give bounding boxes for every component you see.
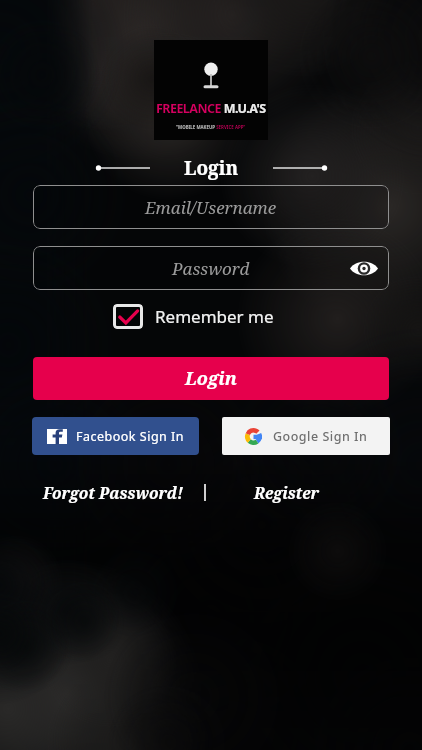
staticText: Login (184, 155, 239, 181)
button[interactable]: Forgot Password! (43, 482, 184, 503)
button[interactable]: Google Sign In (222, 417, 390, 455)
staticText: "MOBILE MAKEUP SERVICE APP" (176, 124, 246, 130)
button[interactable]: Show password (349, 253, 379, 283)
button[interactable]: Email/Username (33, 185, 389, 229)
staticText: Login (185, 366, 237, 391)
button[interactable]: Facebook Sign In (32, 417, 199, 455)
button[interactable]: Password (33, 246, 389, 290)
button[interactable]: Register (254, 482, 319, 503)
staticText: FREELANCE M.U.A'S (156, 100, 266, 117)
button[interactable]: Login (33, 357, 389, 400)
staticText: Remember me (155, 305, 274, 328)
staticText: Email/Username (145, 196, 277, 219)
staticText: Password (172, 257, 250, 280)
button[interactable]: Remember me (113, 304, 274, 329)
staticText: Facebook Sign In (76, 428, 185, 445)
staticText: Google Sign In (273, 428, 368, 445)
